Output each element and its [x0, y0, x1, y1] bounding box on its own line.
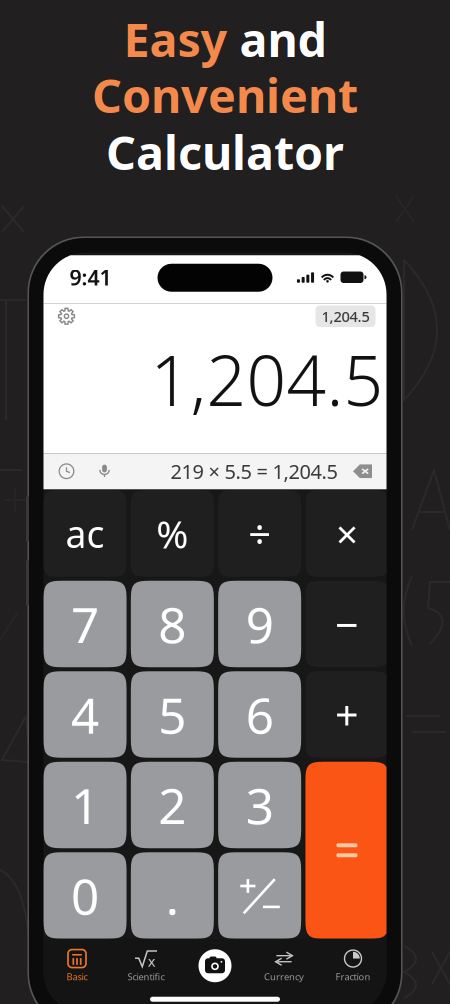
staticText: Fraction: [335, 971, 370, 983]
button[interactable]: −: [305, 581, 388, 667]
staticText: 3: [246, 772, 274, 838]
staticText: Basic: [66, 971, 87, 983]
staticText: x: [148, 951, 156, 971]
button[interactable]: 9: [218, 581, 301, 667]
button[interactable]: 8: [131, 581, 214, 667]
button[interactable]: 2: [131, 762, 214, 848]
staticText: Currency: [264, 971, 304, 983]
button[interactable]: +: [305, 671, 388, 758]
staticText: +: [335, 687, 359, 742]
button[interactable]: 7: [44, 581, 127, 667]
staticText: ×: [336, 508, 358, 559]
button[interactable]: 3: [218, 762, 301, 848]
button[interactable]: Equals: [305, 762, 388, 939]
staticText: 9:41: [69, 263, 111, 291]
staticText: 0: [71, 863, 99, 928]
button[interactable]: History: [54, 459, 78, 483]
staticText: Convenient: [92, 64, 358, 126]
staticText: .: [166, 863, 179, 928]
staticText: 219 × 5.5 = 1,204.5: [170, 458, 337, 485]
button[interactable]: Fraction: [318, 947, 387, 985]
button[interactable]: 5: [131, 671, 214, 758]
button[interactable]: Settings: [54, 305, 78, 327]
staticText: Scientific: [127, 971, 164, 983]
button[interactable]: 1: [43, 762, 126, 848]
staticText: 8: [158, 591, 186, 657]
button[interactable]: 0: [43, 852, 126, 939]
button[interactable]: x: [111, 947, 180, 985]
staticText: 1: [71, 772, 99, 838]
staticText: 5: [158, 682, 186, 747]
staticText: Calculator: [106, 121, 344, 183]
staticText: 6: [246, 682, 274, 747]
button[interactable]: Voice input: [92, 459, 116, 483]
staticText: −: [335, 597, 359, 651]
staticText: ac: [66, 509, 105, 558]
button[interactable]: Currency: [249, 947, 318, 985]
button[interactable]: ×: [305, 490, 388, 577]
staticText: 7: [71, 591, 99, 657]
staticText: 2: [158, 772, 186, 838]
button[interactable]: ÷: [218, 490, 301, 577]
staticText: and: [239, 8, 326, 70]
staticText: 1,204.5: [150, 333, 383, 425]
button[interactable]: Plus minus: [218, 852, 301, 939]
staticText: 1,204.5: [321, 306, 369, 326]
button[interactable]: ac: [44, 490, 127, 577]
button[interactable]: .: [131, 852, 214, 939]
staticText: Easy: [123, 8, 239, 70]
staticText: ÷: [248, 507, 271, 560]
button[interactable]: 1,204.5: [315, 305, 375, 327]
staticText: 9: [246, 591, 274, 657]
button[interactable]: Basic: [42, 947, 111, 985]
button[interactable]: 6: [218, 671, 301, 758]
staticText: 4: [71, 682, 99, 747]
button[interactable]: %: [131, 490, 214, 577]
staticText: %: [156, 508, 188, 559]
button[interactable]: 4: [44, 671, 127, 758]
button[interactable]: Camera: [180, 947, 249, 985]
button[interactable]: Delete: [349, 460, 375, 482]
